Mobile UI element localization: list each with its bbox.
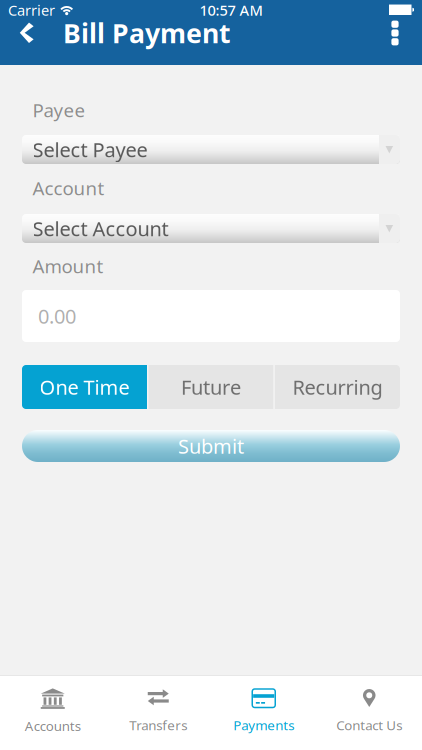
staticText: Bill Payment	[63, 15, 231, 51]
button[interactable]: 0.00	[22, 290, 400, 342]
button[interactable]: Select Payee	[22, 135, 400, 164]
button[interactable]: More options	[373, 20, 417, 46]
staticText: Recurring	[292, 374, 382, 400]
button[interactable]: Submit	[22, 430, 400, 462]
staticText: Account	[32, 176, 104, 200]
staticText: Select Payee	[32, 136, 147, 163]
staticText: Select Account	[32, 215, 168, 242]
staticText: Payee	[32, 98, 85, 122]
button[interactable]: Contact Us	[316, 676, 422, 750]
staticText: 0.00	[38, 303, 76, 329]
staticText: Transfers	[129, 716, 187, 734]
button[interactable]: Accounts	[0, 676, 105, 750]
button[interactable]: Select Account	[22, 214, 400, 243]
button[interactable]: Future	[148, 365, 273, 409]
staticText: Submit	[178, 433, 244, 459]
staticText: Contact Us	[336, 716, 402, 734]
button[interactable]: Recurring	[275, 365, 400, 409]
button[interactable]: Transfers	[105, 676, 211, 750]
staticText: One Time	[39, 374, 129, 400]
staticText: Payments	[233, 716, 294, 734]
staticText: Carrier	[8, 0, 55, 20]
button[interactable]: Payments	[211, 676, 316, 750]
staticText: 10:57 AM	[199, 0, 262, 20]
button[interactable]: Back	[0, 20, 48, 46]
button[interactable]: One Time	[22, 365, 147, 409]
staticText: Amount	[32, 254, 103, 278]
staticText: Accounts	[25, 717, 81, 735]
staticText: Future	[181, 374, 241, 400]
